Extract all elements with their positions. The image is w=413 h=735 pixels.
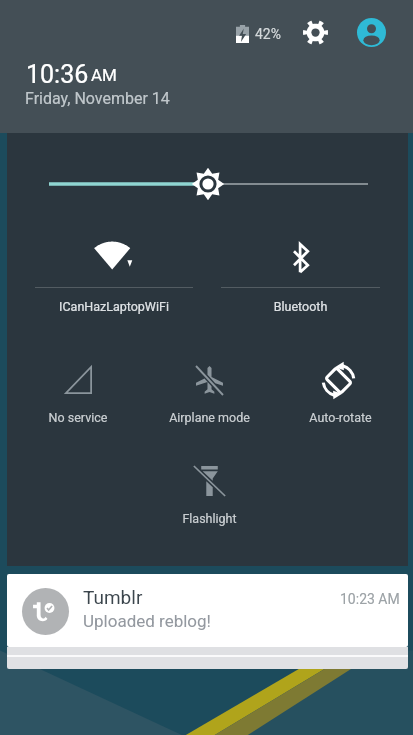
staticText: 10:23 AM (340, 591, 400, 607)
staticText: AM (91, 65, 117, 85)
staticText: No service (12, 410, 144, 425)
staticText: Tumblr (83, 586, 143, 608)
button[interactable]: Airplane mode (144, 362, 275, 457)
button[interactable]: ICanHazLaptopWiFi (21, 229, 207, 329)
button[interactable]: User profile (351, 12, 391, 52)
button[interactable]: Brightness (7, 166, 408, 202)
button[interactable]: Bluetooth (207, 229, 394, 329)
button[interactable]: Tumblr (7, 574, 408, 647)
staticText: Uploaded reblog! (83, 611, 211, 631)
button[interactable]: No service (12, 362, 144, 457)
staticText: Bluetooth (207, 299, 394, 314)
staticText: Flashlight (144, 511, 275, 526)
staticText: Friday, November 14 (25, 89, 170, 108)
button[interactable]: Auto-rotate (275, 362, 406, 457)
staticText: 10:36 (26, 60, 89, 89)
staticText: ICanHazLaptopWiFi (21, 299, 207, 314)
button[interactable]: Flashlight (144, 463, 275, 558)
staticText: Auto-rotate (275, 410, 406, 425)
button[interactable]: Battery 42 percent (226, 12, 290, 52)
button[interactable]: Settings (295, 12, 335, 52)
staticText: 42% (255, 26, 281, 42)
staticText: Airplane mode (144, 410, 275, 425)
